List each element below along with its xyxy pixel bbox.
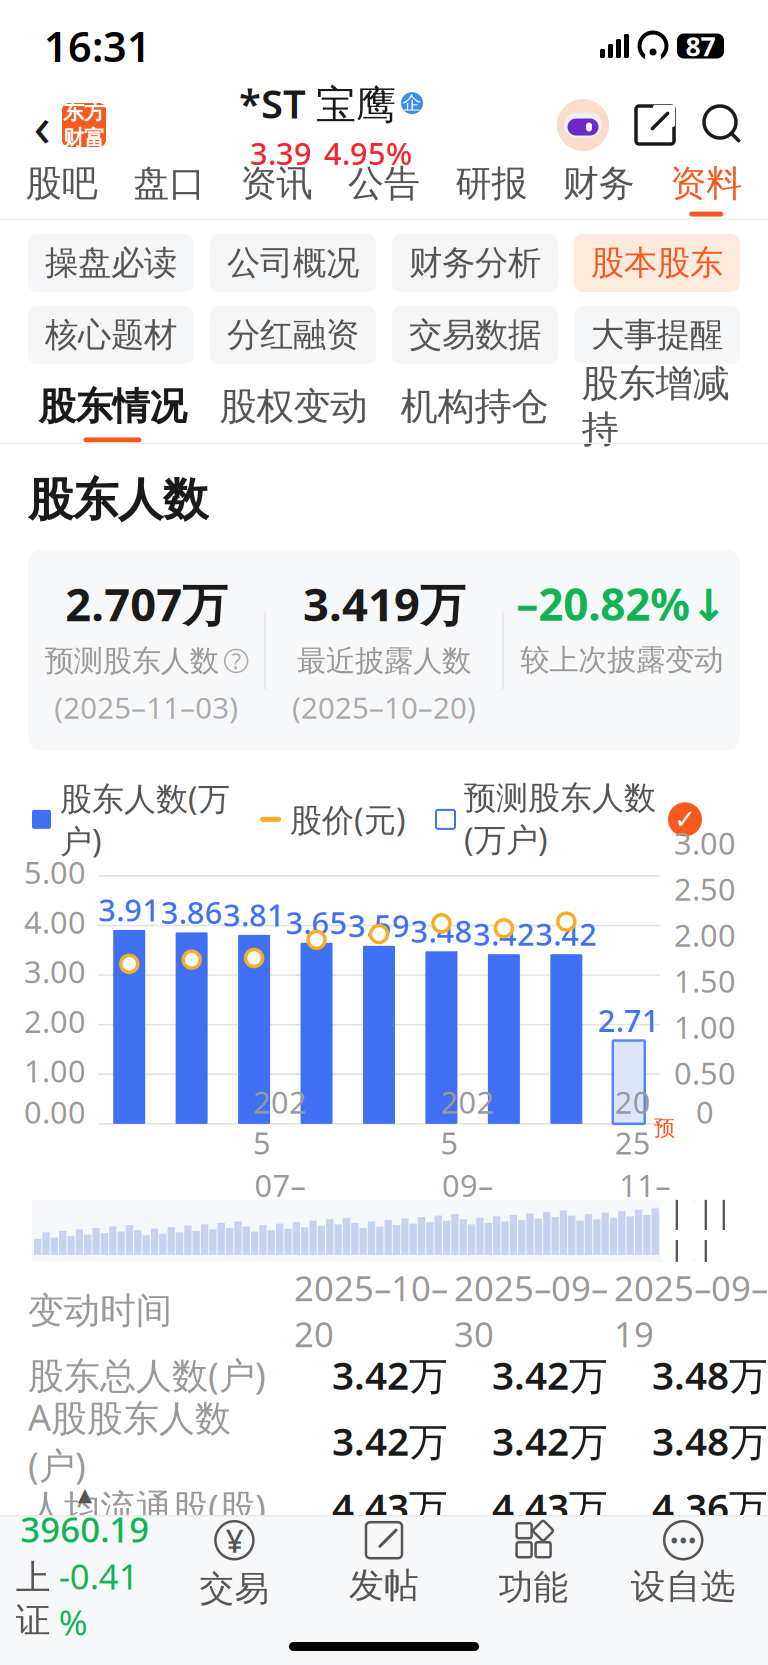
button[interactable]: 资料 [653,158,760,220]
staticText: 人均流通股(股) [28,1483,266,1531]
staticText: 0.50 [674,1052,736,1093]
button[interactable]: 发帖 [309,1516,459,1612]
staticText: A股股东人数(户) [28,1393,231,1489]
staticText: 3.42 [535,913,597,954]
button[interactable]: 分红融资 [210,306,376,364]
staticText: 3.42万 [332,1349,448,1400]
staticText: 2.00 [674,914,736,955]
staticText: 交易 [199,1567,269,1610]
button[interactable]: Share [632,102,678,148]
button[interactable]: Range end handle [694,1198,736,1264]
staticText: 0 [696,1091,714,1132]
staticText: 3.42万 [492,1349,608,1400]
staticText: 盘口 [133,161,205,206]
button[interactable]: 财务 [545,158,652,220]
staticText: 预 [654,1115,675,1141]
button[interactable]: 东方财富 [62,103,106,147]
staticText: 2.707万 [65,574,227,634]
staticText: 股价(元) [290,798,406,841]
button[interactable]: 上证 index [10,1516,160,1612]
staticText: 4.43万 [492,1481,608,1532]
staticText: 2.42 [691,1547,768,1598]
staticText: 4.36万 [652,1481,768,1532]
staticText: 0.00 [24,1091,86,1132]
staticText: 1.50 [674,960,736,1001]
staticText: 3.42万 [332,1415,448,1466]
staticText: 2.34 [531,1547,608,1598]
staticText: 较上次披露变动 [520,642,723,678]
button[interactable]: 股权变动 [203,382,384,444]
button[interactable]: 机构持仓 [384,382,565,444]
staticText: 2025 [440,1081,494,1163]
staticText: 3.00 [674,822,736,863]
staticText: 3.39 [250,133,312,173]
staticText: 09–19 [442,1165,493,1246]
staticText: 4.95% [324,133,412,173]
staticText: 3.65 [286,902,348,943]
button[interactable]: ¥ [160,1516,309,1612]
staticText: 股本股东 [591,242,723,283]
staticText: ¥ [225,1519,243,1561]
button[interactable]: Range start handle [660,1200,694,1262]
button[interactable]: 股东增减持 [565,382,746,444]
staticText: -0.41% [59,1553,139,1645]
staticText: 最近披露人数 [297,643,471,679]
button[interactable]: 盘口 [115,158,223,220]
staticText: 5.00 [24,852,86,893]
button[interactable]: 大事提醒 [574,306,740,364]
button[interactable]: 核心题材 [28,306,194,364]
staticText: 07–18 [255,1165,306,1246]
staticText: 股东人数 [28,472,208,528]
staticText: ‹ [33,88,50,162]
staticText: 股吧 [26,161,98,206]
staticText: 机构持仓 [400,384,548,429]
staticText: || [668,1188,686,1273]
staticText: 分红融资 [227,314,359,355]
staticText: 预测股东人数 [45,643,219,679]
button[interactable]: 研报 [438,158,545,220]
button[interactable]: 公司概况 [210,234,376,292]
staticText: 交易数据 [409,314,541,355]
staticText: 3960.19 [20,1506,149,1552]
staticText: 3.48万 [652,1415,768,1466]
staticText: 股东总人数(户) [28,1351,266,1399]
staticText: 3.48 [410,910,472,951]
staticText: 公司概况 [227,242,359,283]
staticText: 3.91 [98,889,160,930]
button[interactable]: 股吧 [8,158,115,220]
staticText: 3.81 [223,894,285,935]
staticText: 核心题材 [45,314,177,355]
button[interactable]: 功能 [459,1516,608,1612]
button[interactable]: AI assistant [556,98,610,152]
staticText: 股权变动 [219,384,367,429]
staticText: 股价(元) [28,1549,158,1597]
staticText: 3.86 [161,892,223,932]
staticText: 3.419万 [303,574,465,634]
staticText: 2025 [253,1081,307,1163]
staticText: 1.00 [674,1006,736,1047]
button[interactable]: ••• [608,1516,758,1612]
staticText: 资讯 [241,161,313,206]
staticText: 股东人数(万户) [60,777,230,862]
staticText: 3.42 [473,913,535,954]
button[interactable]: 财务分析 [392,234,558,292]
button[interactable]: 交易数据 [392,306,558,364]
staticText: ••• [670,1524,697,1556]
staticText: 预测股东人数(万户) [464,778,656,860]
button[interactable]: Back [22,96,62,154]
button[interactable]: 资讯 [223,158,330,220]
button[interactable]: 操盘必读 [28,234,194,292]
staticText: (2025–11–03) [54,688,238,727]
staticText: 财富 [63,125,105,151]
button[interactable]: 股东情况 [22,382,203,444]
staticText: 3.00 [24,951,86,992]
button[interactable]: Search [700,102,746,148]
staticText: ✓ [674,804,696,834]
button[interactable]: 股本股东 [574,234,740,292]
staticText: 设自选 [631,1565,736,1608]
staticText: 1.00 [24,1050,86,1091]
button[interactable]: 公告 [330,158,438,220]
staticText: 资料 [670,161,742,206]
staticText: 2.00 [24,1001,86,1041]
